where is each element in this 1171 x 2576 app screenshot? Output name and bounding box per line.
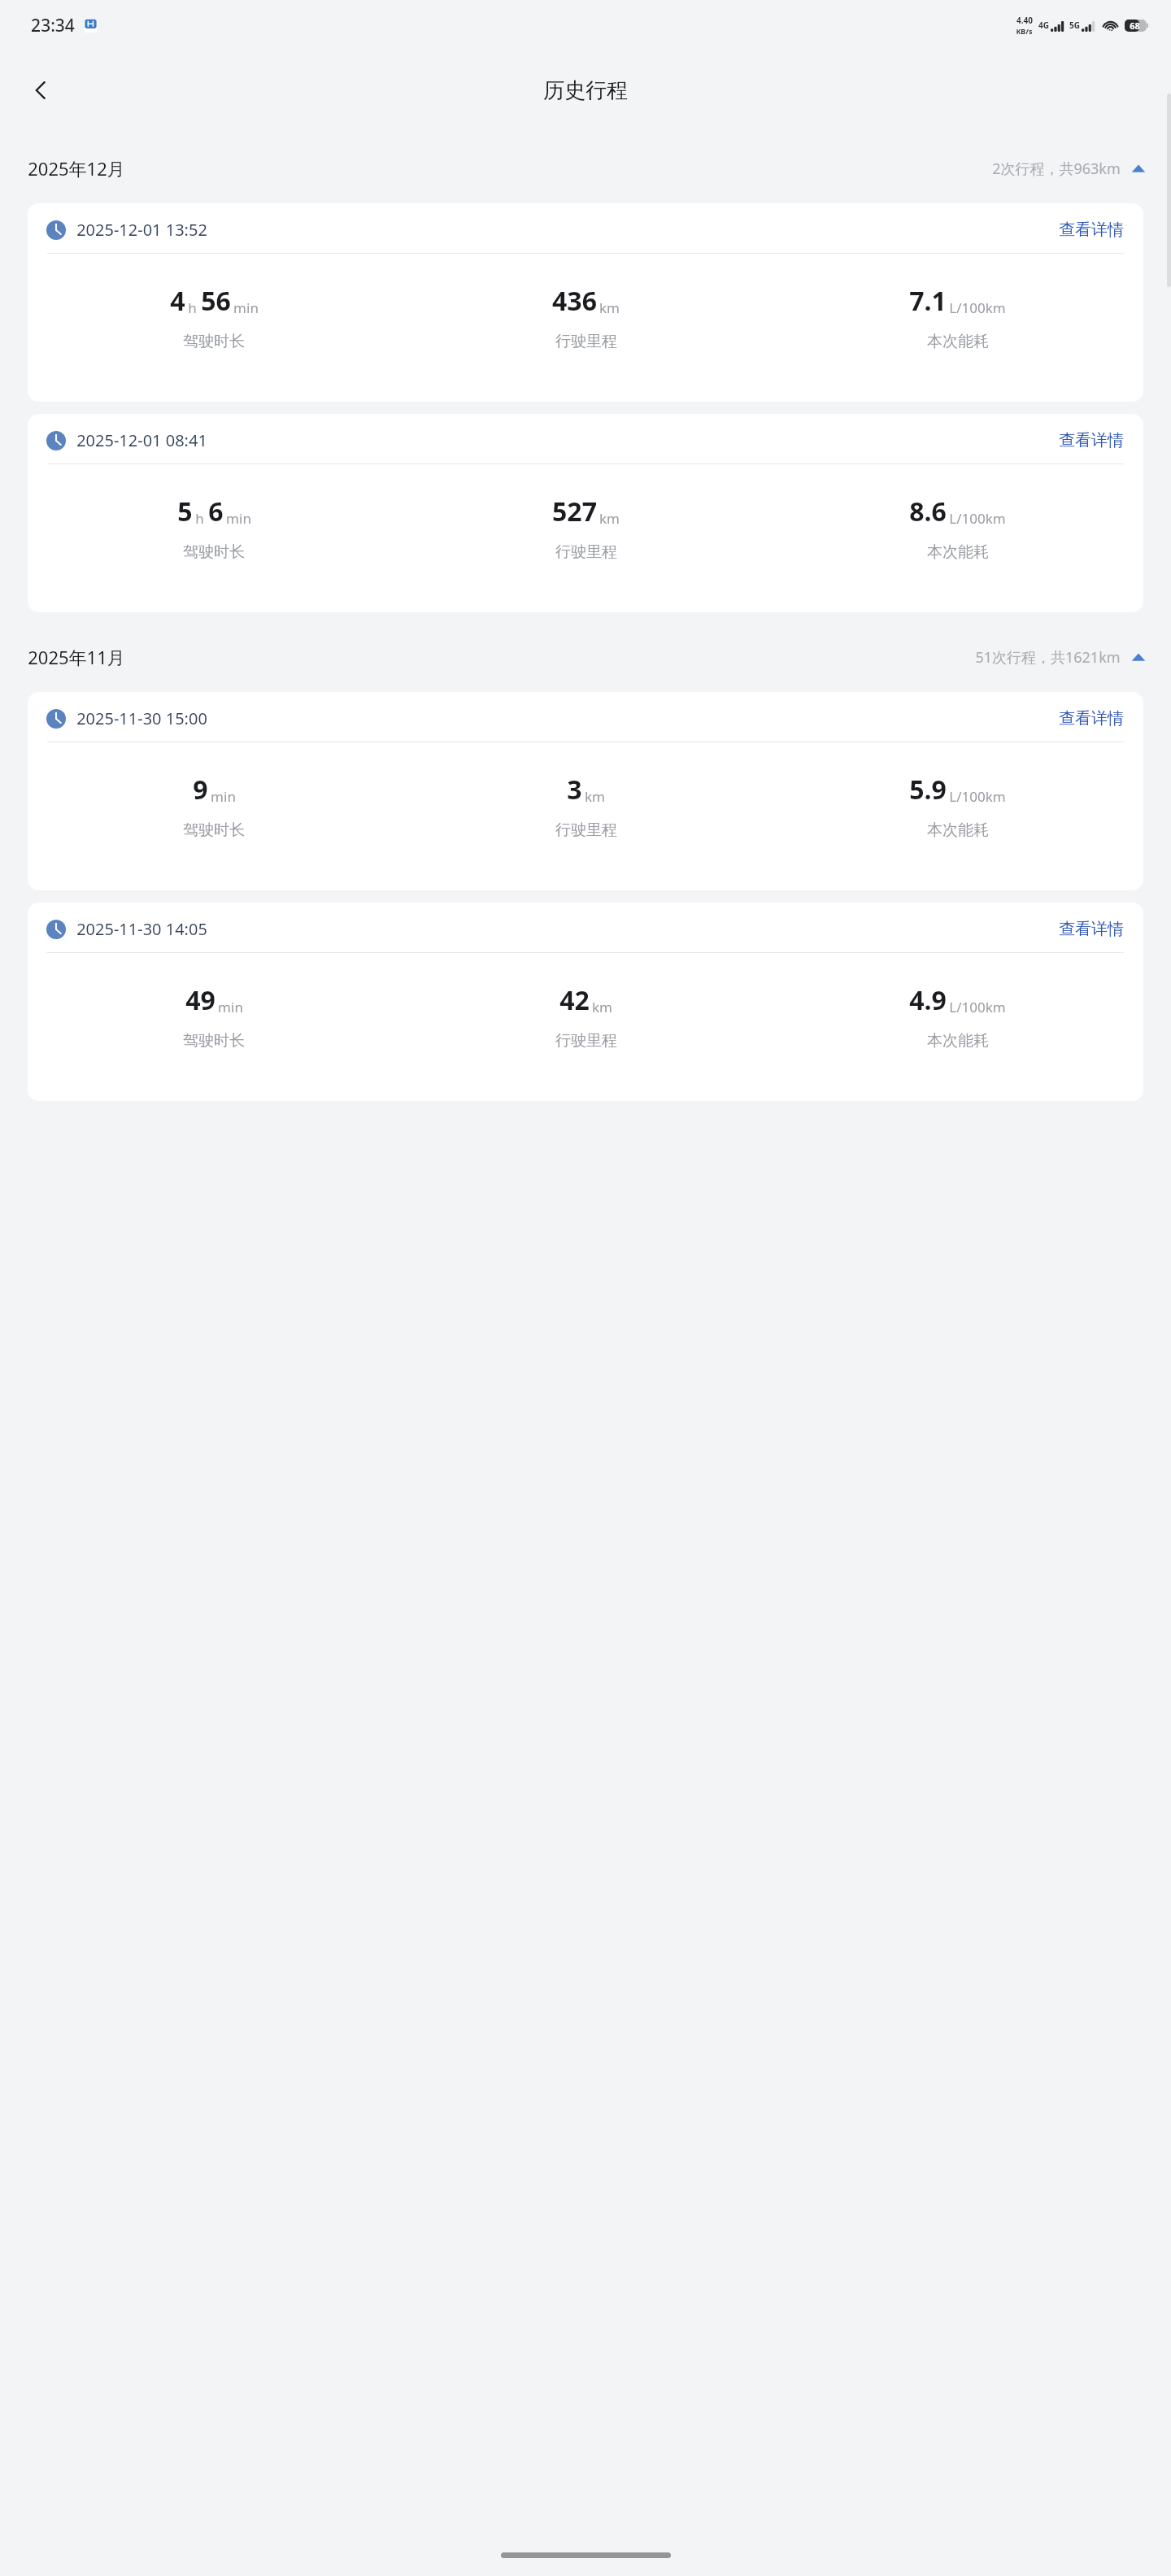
staticText: 本次能耗 (927, 820, 989, 840)
staticText: min (233, 298, 259, 317)
staticText: 51次行程，共1621km (975, 647, 1121, 668)
staticText: km (599, 298, 620, 317)
staticText: 5 (177, 494, 193, 529)
staticText: L/100km (949, 298, 1006, 317)
staticText: 查看详情 (1059, 220, 1124, 240)
staticText: 行驶里程 (555, 542, 617, 562)
staticText: 2025-12-01 13:52 (76, 219, 207, 241)
staticText: L/100km (949, 787, 1006, 806)
staticText: 5.9 (909, 772, 947, 807)
staticText: 本次能耗 (927, 332, 989, 351)
staticText: km (599, 509, 620, 528)
staticText: 行驶里程 (555, 1031, 617, 1051)
button[interactable]: 查看详情 (1059, 430, 1124, 450)
staticText: L/100km (949, 509, 1006, 528)
staticText: 历史行程 (543, 77, 628, 104)
staticText: 查看详情 (1059, 708, 1124, 729)
staticText: 49 (185, 982, 215, 1018)
staticText: 2025年12月 (28, 156, 125, 181)
staticText: 3 (567, 772, 582, 807)
staticText: 56 (201, 283, 231, 319)
staticText: 4.9 (909, 982, 947, 1018)
staticText: L/100km (949, 998, 1006, 1016)
staticText: 2次行程，共963km (992, 159, 1121, 179)
button[interactable]: 2025年11月 (0, 640, 1171, 674)
staticText: min (218, 998, 243, 1016)
staticText: 驾驶时长 (183, 820, 245, 840)
staticText: h (195, 509, 204, 528)
staticText: 行驶里程 (555, 332, 617, 351)
staticText: 2025-11-30 14:05 (76, 918, 207, 940)
staticText: km (585, 787, 605, 806)
staticText: 查看详情 (1059, 919, 1124, 939)
staticText: 8.6 (909, 494, 947, 529)
staticText: 7.1 (909, 283, 947, 319)
staticText: 23:34 (31, 14, 75, 37)
button[interactable]: 2025-12-01 13:52 (28, 203, 1143, 402)
staticText: 本次能耗 (927, 542, 989, 562)
staticText: 6 (208, 494, 224, 529)
staticText: 驾驶时长 (183, 332, 245, 351)
button[interactable]: 查看详情 (1059, 220, 1124, 240)
staticText: 驾驶时长 (183, 542, 245, 562)
staticText: min (211, 787, 236, 806)
staticText: KB/s (1016, 26, 1033, 36)
staticText: 4 (170, 283, 185, 319)
staticText: 527 (552, 494, 597, 529)
button[interactable]: 2025-11-30 14:05 (28, 903, 1143, 1101)
button[interactable]: 2025年12月 (0, 151, 1171, 185)
staticText: 2025年11月 (28, 645, 125, 669)
staticText: min (226, 509, 251, 528)
staticText: 查看详情 (1059, 430, 1124, 450)
button[interactable]: 2025-11-30 15:00 (28, 692, 1143, 890)
staticText: 驾驶时长 (183, 1031, 245, 1051)
staticText: 2025-12-01 08:41 (76, 429, 207, 451)
staticText: 436 (552, 283, 597, 319)
staticText: 5G (1069, 20, 1080, 31)
button[interactable]: 返回 (18, 67, 63, 113)
staticText: 42 (559, 982, 590, 1018)
staticText: 行驶里程 (555, 820, 617, 840)
staticText: 4.40 (1016, 15, 1033, 26)
staticText: km (592, 998, 612, 1016)
button[interactable]: 2025-12-01 08:41 (28, 414, 1143, 612)
staticText: h (188, 298, 197, 317)
button[interactable]: 查看详情 (1059, 708, 1124, 729)
staticText: 本次能耗 (927, 1031, 989, 1051)
staticText: 68 (1130, 20, 1140, 32)
staticText: 4G (1038, 20, 1049, 31)
staticText: 9 (193, 772, 208, 807)
staticText: 2025-11-30 15:00 (76, 707, 207, 729)
button[interactable]: 查看详情 (1059, 919, 1124, 939)
